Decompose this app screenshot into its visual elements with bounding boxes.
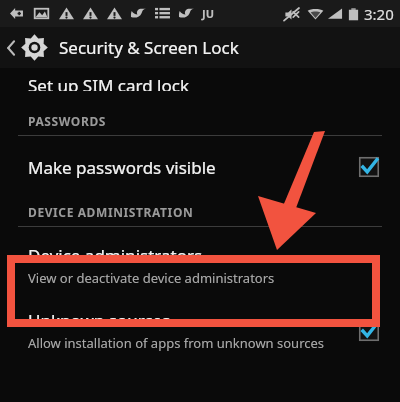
button[interactable]: Unknown sources [0, 305, 400, 356]
staticText: Security & Screen Lock [59, 36, 239, 59]
button[interactable]: Set up SIM card lock [0, 68, 400, 85]
staticText: DEVICE ADMINISTRATION [28, 204, 194, 220]
button[interactable]: Toggle checkbox [356, 318, 382, 344]
button[interactable]: Toggle checkbox [356, 154, 382, 180]
staticText: JU [202, 6, 214, 21]
staticText: Allow installation of apps from unknown … [28, 334, 325, 352]
staticText: Set up SIM card lock [28, 74, 189, 91]
staticText: 3:20 [364, 4, 394, 24]
staticText: View or deactivate device administrators [28, 269, 275, 287]
staticText: Make passwords visible [28, 156, 216, 179]
button[interactable]: Navigate up [0, 33, 243, 62]
staticText: Unknown sources [28, 309, 171, 332]
staticText: PASSWORDS [28, 113, 107, 129]
staticText: Device administrators [28, 244, 203, 267]
button[interactable]: Device administrators [0, 233, 400, 297]
button[interactable]: Make passwords visible [0, 150, 400, 184]
